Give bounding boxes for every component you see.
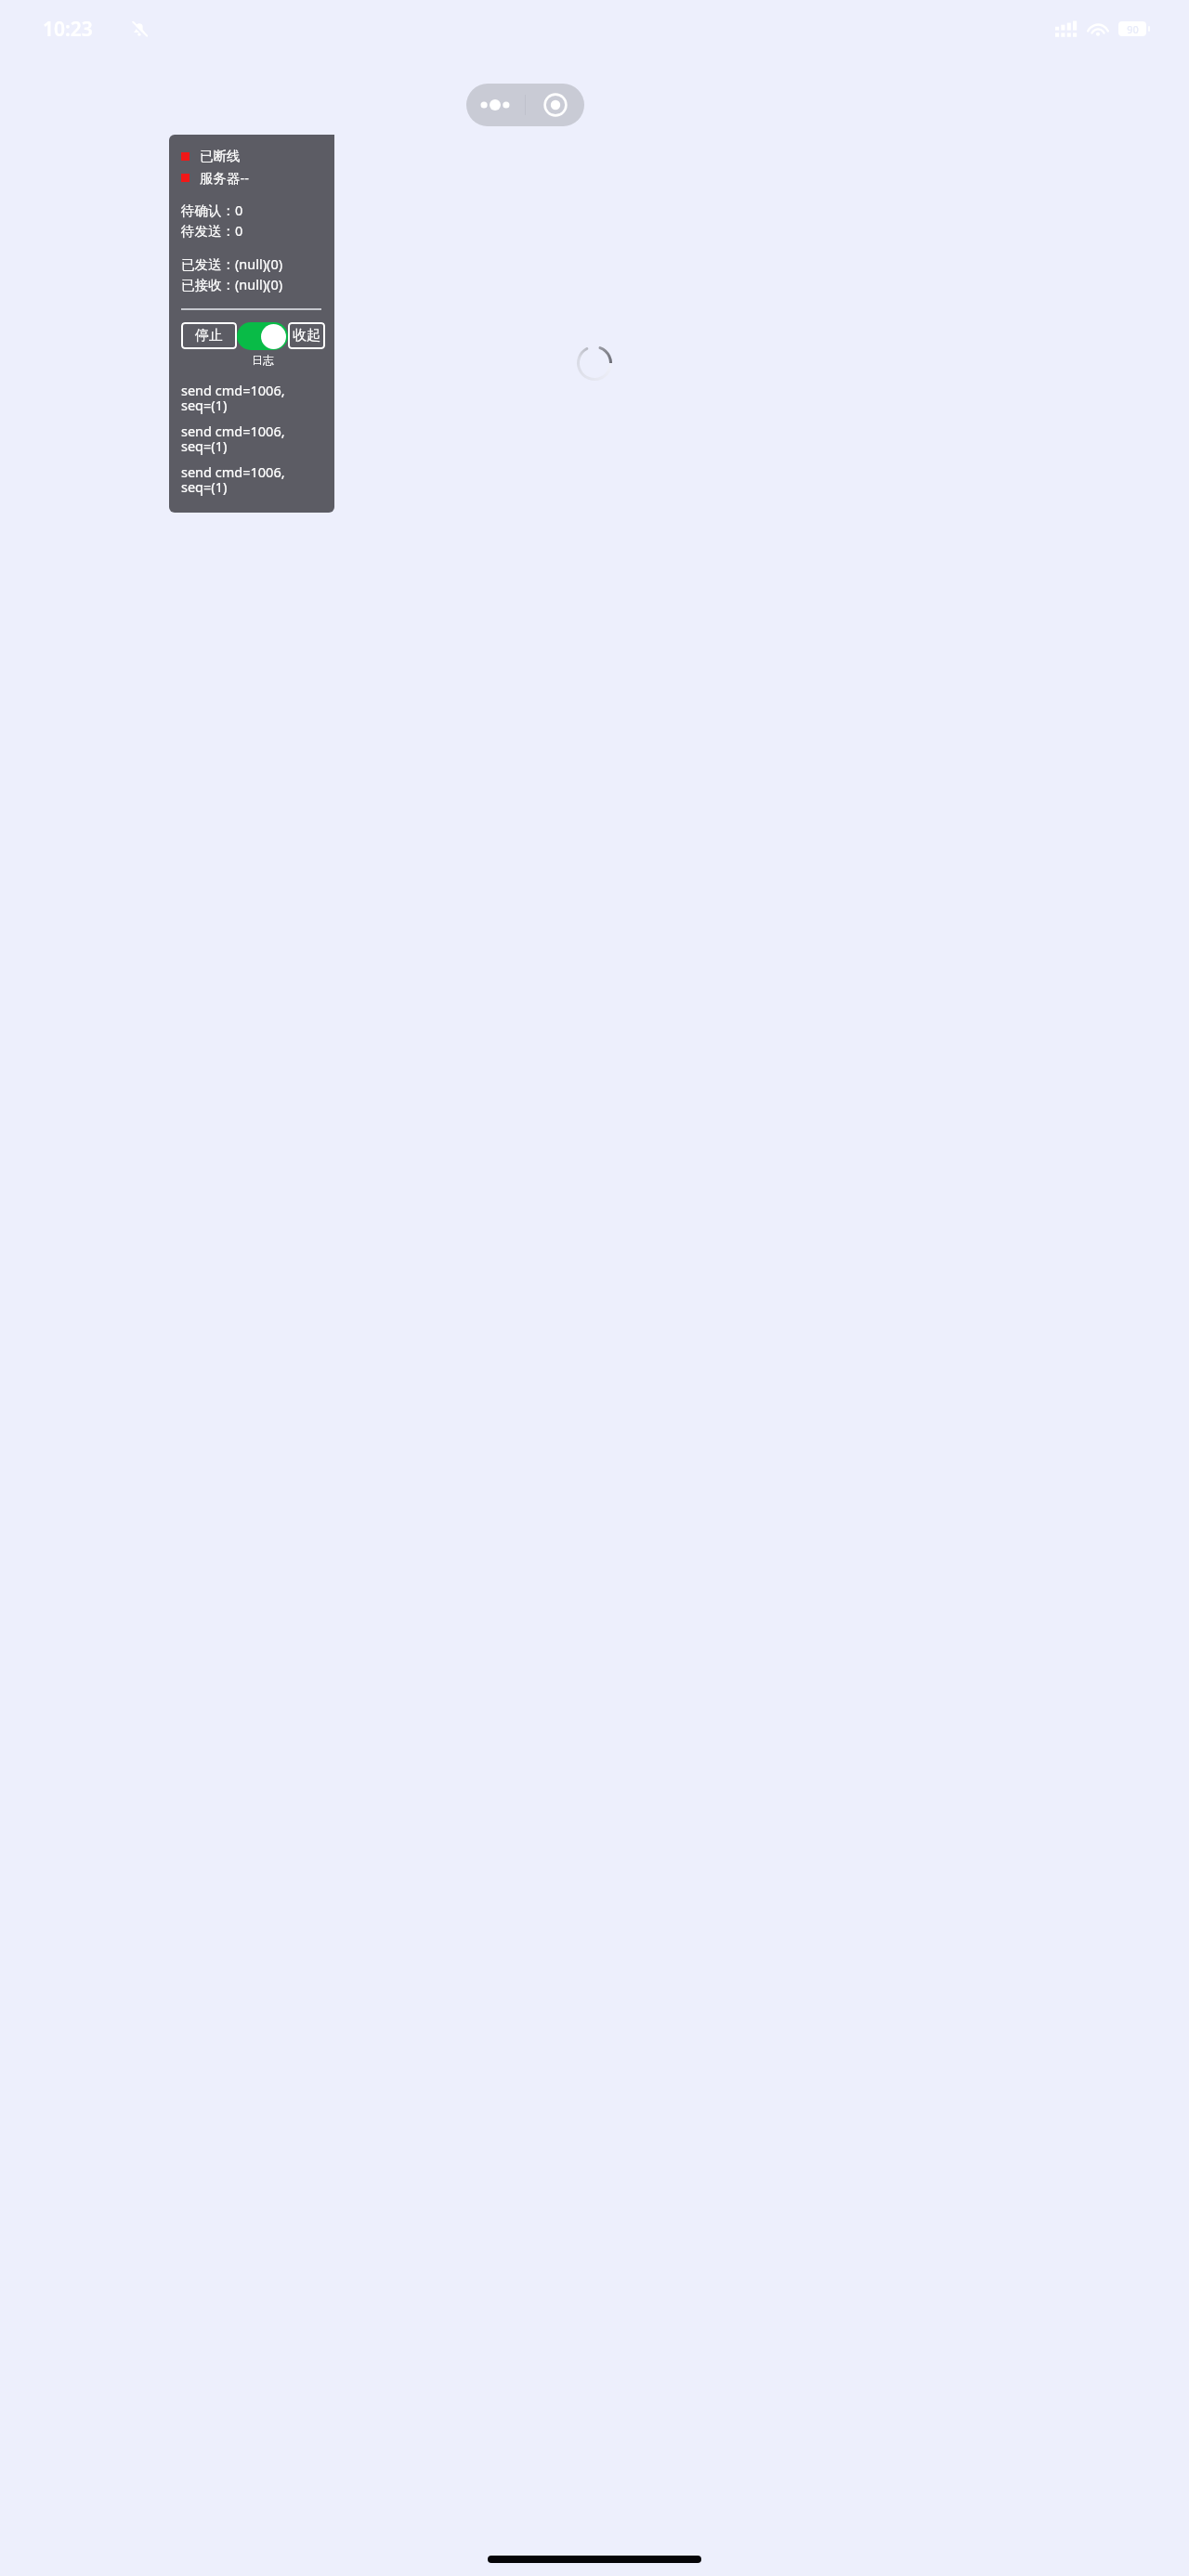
button[interactable]: Close bbox=[526, 84, 584, 126]
button[interactable]: 收起 bbox=[288, 322, 325, 349]
staticText: 已发送：(null)(0) bbox=[181, 254, 283, 273]
staticText: 已断线 bbox=[200, 148, 241, 164]
button[interactable]: 停止 bbox=[181, 322, 237, 349]
staticText: 服务器-- bbox=[200, 168, 249, 187]
staticText: send cmd=1006, seq=(1) bbox=[181, 422, 325, 455]
button[interactable]: More bbox=[466, 84, 525, 126]
staticText: 已接收：(null)(0) bbox=[181, 275, 283, 293]
staticText: 90 bbox=[1127, 22, 1139, 36]
staticText: 待确认：0 bbox=[181, 201, 243, 219]
staticText: send cmd=1006, seq=(1) bbox=[181, 381, 325, 414]
staticText: 日志 bbox=[252, 353, 274, 367]
staticText: 收起 bbox=[293, 327, 320, 345]
button[interactable]: Toggle log bbox=[237, 322, 288, 350]
staticText: send cmd=1006, seq=(1) bbox=[181, 462, 325, 496]
staticText: 待发送：0 bbox=[181, 221, 243, 240]
staticText: 10:23 bbox=[43, 16, 93, 43]
staticText: 停止 bbox=[195, 327, 223, 345]
